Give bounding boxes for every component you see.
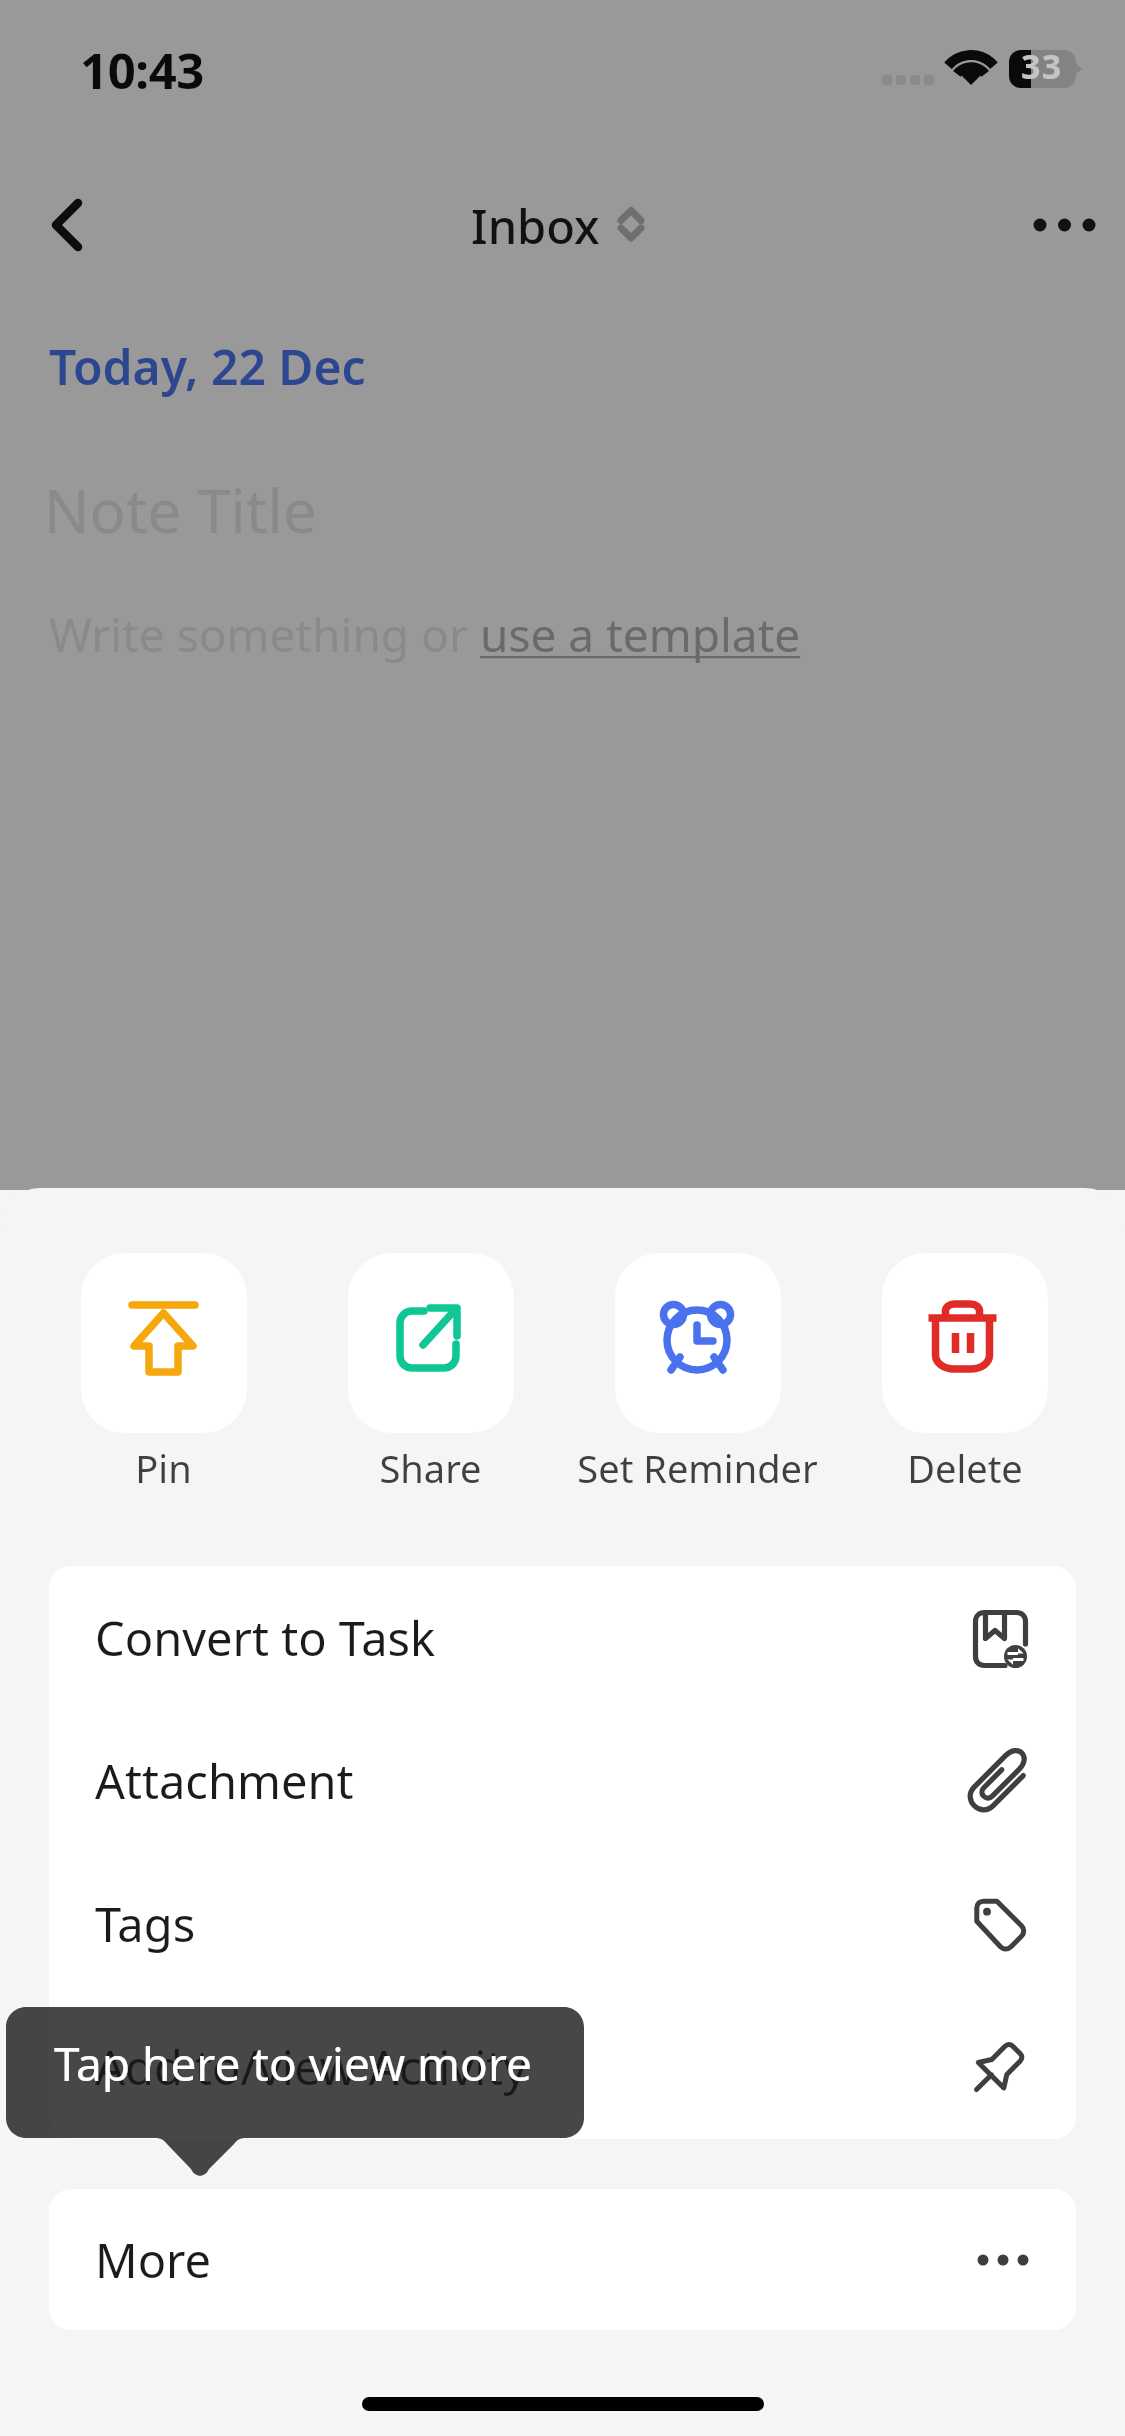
button[interactable]: Set Reminder xyxy=(564,1253,831,1494)
button[interactable]: Tags xyxy=(49,1852,1076,1995)
button[interactable]: Inbox xyxy=(471,188,658,263)
button[interactable]: Convert to Task xyxy=(49,1566,1076,1709)
staticText: Note Title xyxy=(44,469,317,551)
staticText: Today, 22 Dec xyxy=(49,334,366,399)
button[interactable]: More xyxy=(49,2189,1076,2330)
staticText: Share xyxy=(379,1442,482,1494)
button[interactable]: Share xyxy=(297,1253,564,1494)
staticText: Inbox xyxy=(471,194,600,258)
staticText: use a template xyxy=(480,603,801,666)
staticText: Attachment xyxy=(95,1749,354,1813)
button[interactable]: Attachment xyxy=(49,1709,1076,1852)
staticText: Add to/view Activity xyxy=(95,2035,528,2099)
staticText: More xyxy=(95,2228,212,2292)
staticText: Delete xyxy=(907,1442,1023,1494)
button[interactable]: Back xyxy=(22,180,112,270)
button[interactable]: Delete xyxy=(831,1253,1098,1494)
button[interactable]: More options xyxy=(1015,180,1115,270)
staticText: Tags xyxy=(95,1892,196,1956)
staticText: Pin xyxy=(135,1442,192,1494)
button[interactable]: Tap here to view more xyxy=(6,2007,584,2177)
button[interactable]: Pin xyxy=(30,1253,297,1494)
staticText: Set Reminder xyxy=(577,1442,818,1494)
staticText: Convert to Task xyxy=(95,1606,436,1670)
button[interactable]: Add to/view Activity xyxy=(49,1995,1076,2138)
staticText: Write something or xyxy=(49,603,480,666)
staticText: 10:43 xyxy=(80,37,204,104)
staticText: Tap here to view more xyxy=(54,2032,532,2095)
staticText: 33 xyxy=(1021,43,1063,89)
